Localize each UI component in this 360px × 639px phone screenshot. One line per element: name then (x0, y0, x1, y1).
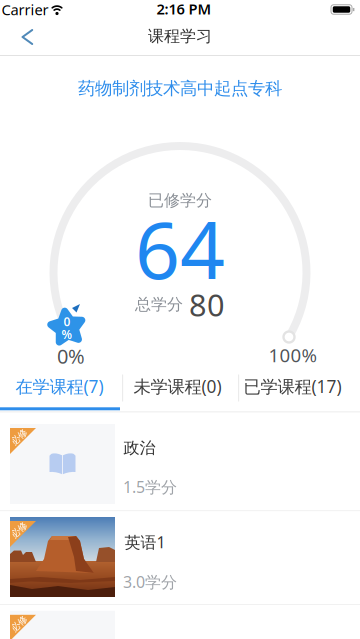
button[interactable]: 必修 (0, 605, 360, 639)
staticText: % (61, 326, 72, 342)
button[interactable]: Back (20, 28, 36, 46)
staticText: 政治 (123, 438, 155, 458)
staticText: 已学课程(17) (243, 375, 341, 398)
staticText: 1.5学分 (123, 476, 177, 497)
staticText: 必修 (10, 618, 28, 630)
staticText: 0% (57, 343, 85, 369)
staticText: 总学分 (135, 295, 183, 314)
staticText: 100% (268, 343, 317, 367)
staticText: 英语1 (124, 531, 165, 553)
staticText: Carrier (1, 0, 48, 19)
staticText: 课程学习 (148, 26, 212, 46)
staticText: 在学课程(7) (15, 375, 103, 398)
button[interactable]: 未学课程(0) (117, 369, 237, 403)
staticText: 0 (63, 314, 70, 329)
staticText: 64 (135, 196, 225, 301)
button[interactable]: 已学课程(17) (232, 369, 352, 403)
button[interactable]: 必修 (0, 511, 360, 604)
staticText: 2:16 PM (156, 0, 211, 18)
staticText: 80 (189, 284, 225, 325)
button[interactable]: 药物制剂技术高中起点专科 (78, 78, 282, 99)
staticText: 必修 (10, 431, 28, 443)
staticText: 已修学分 (148, 191, 212, 210)
button[interactable]: 在学课程(7) (0, 369, 119, 403)
staticText: 药物制剂技术高中起点专科 (78, 78, 282, 99)
staticText: 必修 (10, 524, 28, 536)
staticText: 3.0学分 (123, 571, 177, 592)
button[interactable]: 必修 (0, 417, 360, 510)
staticText: 未学课程(0) (133, 375, 221, 398)
